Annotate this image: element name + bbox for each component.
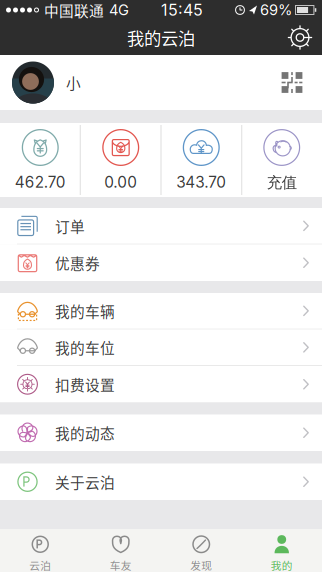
button[interactable]: 343.70 [161,123,241,197]
staticText: 4G [109,1,129,19]
staticText: 15:45 [161,0,203,20]
button[interactable]: 关于云泊 [0,463,322,500]
staticText: 订单 [55,215,85,236]
button[interactable]: 我的车位 [0,329,322,366]
staticText: 462.70 [15,173,66,192]
staticText: 343.70 [176,173,226,192]
staticText: 我的动态 [55,422,115,443]
staticText: 云泊 [29,557,51,572]
button[interactable]: 小 [0,55,322,110]
staticText: 0.00 [104,173,137,192]
button[interactable]: 我的动态 [0,414,322,451]
staticText: 发现 [190,557,212,572]
staticText: 扣费设置 [55,374,115,395]
button[interactable]: 优惠券 [0,244,322,281]
staticText: 我的车位 [55,337,115,358]
button[interactable]: 0.00 [80,123,161,197]
staticText: 我的 [271,557,293,572]
staticText: 小 [66,72,81,93]
button[interactable]: 我的 [241,529,322,572]
button[interactable]: 462.70 [0,123,80,197]
button[interactable]: 发现 [161,529,241,572]
staticText: 我的车辆 [55,300,115,321]
staticText: 优惠券 [55,252,100,273]
staticText: 充值 [267,173,297,192]
button[interactable]: 订单 [0,208,322,244]
button[interactable]: 设置 [278,20,322,55]
staticText: 69% [260,1,292,19]
staticText: 车友 [110,557,132,572]
button[interactable]: 车友 [80,529,161,572]
staticText: 我的云泊 [127,25,195,50]
button[interactable]: 扣费设置 [0,366,322,402]
button[interactable]: 云泊 [0,529,80,572]
button[interactable]: 充值 [241,123,322,197]
button[interactable]: 我的车辆 [0,293,322,329]
staticText: 关于云泊 [55,471,115,492]
staticText: 中国联通 [44,0,104,21]
